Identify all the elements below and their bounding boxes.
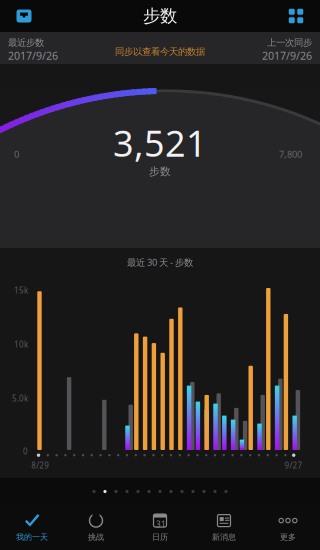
staticText: 2017/9/26 bbox=[262, 48, 312, 63]
staticText: 最近步数 bbox=[8, 37, 44, 48]
staticText: 0 bbox=[23, 446, 28, 457]
staticText: 步数 bbox=[149, 165, 171, 178]
staticText: 我的一天 bbox=[16, 532, 48, 542]
staticText: 5.0k bbox=[12, 393, 28, 404]
staticText: 挑战 bbox=[88, 532, 104, 542]
staticText: 8/29 bbox=[31, 460, 49, 471]
button[interactable]: 我的一天 bbox=[0, 505, 64, 550]
staticText: 7,800 bbox=[279, 148, 302, 160]
staticText: 新消息 bbox=[212, 532, 236, 542]
staticText: 3,521 bbox=[113, 119, 207, 167]
staticText: 31 bbox=[156, 519, 166, 530]
staticText: 最近 30 天 - 步数 bbox=[127, 256, 193, 268]
button[interactable]: 新消息 bbox=[192, 505, 256, 550]
staticText: 日历 bbox=[152, 532, 168, 542]
button[interactable]: 更多 bbox=[256, 505, 320, 550]
button[interactable]: 收件箱 bbox=[4, 0, 44, 32]
staticText: 0 bbox=[14, 148, 19, 160]
button[interactable]: 网格视图 bbox=[276, 0, 316, 32]
button[interactable]: 31 bbox=[128, 505, 192, 550]
staticText: 同步以查看今天的数据 bbox=[115, 46, 205, 57]
staticText: 15k bbox=[14, 285, 28, 296]
staticText: 9/27 bbox=[284, 460, 302, 471]
staticText: 上一次同步 bbox=[267, 37, 312, 48]
staticText: 10k bbox=[14, 339, 28, 350]
staticText: 更多 bbox=[280, 532, 296, 542]
button[interactable]: 挑战 bbox=[64, 505, 128, 550]
staticText: 步数 bbox=[143, 5, 177, 27]
staticText: 2017/9/26 bbox=[8, 48, 58, 63]
